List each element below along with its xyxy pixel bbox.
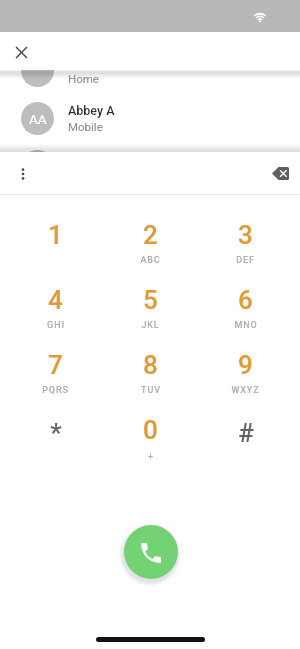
- staticText: AA: [29, 111, 47, 127]
- staticText: +: [148, 452, 154, 463]
- button[interactable]: 8: [103, 350, 198, 412]
- staticText: 2: [143, 220, 158, 250]
- staticText: 1: [48, 220, 63, 250]
- button[interactable]: 9: [198, 350, 293, 412]
- button[interactable]: Backspace: [268, 161, 292, 185]
- button[interactable]: 1: [8, 220, 103, 282]
- button[interactable]: 3: [198, 220, 293, 282]
- staticText: JKL: [141, 320, 160, 331]
- button[interactable]: AB: [0, 142, 300, 152]
- staticText: 0: [143, 415, 158, 445]
- staticText: Home: [68, 72, 99, 85]
- staticText: 6: [238, 285, 253, 315]
- button[interactable]: #: [198, 418, 293, 480]
- button[interactable]: 6: [198, 285, 293, 347]
- staticText: 4: [48, 285, 63, 315]
- staticText: DEF: [236, 255, 255, 266]
- button[interactable]: 4: [8, 285, 103, 347]
- staticText: GHI: [47, 320, 65, 331]
- button[interactable]: Call: [124, 525, 178, 579]
- button[interactable]: AA: [0, 94, 300, 142]
- staticText: 7: [48, 350, 63, 380]
- staticText: 8: [143, 350, 158, 380]
- staticText: WXYZ: [231, 385, 260, 396]
- button[interactable]: Close: [9, 40, 33, 64]
- staticText: Mobile: [68, 120, 103, 133]
- staticText: ABC: [140, 255, 161, 266]
- staticText: MNO: [234, 320, 258, 331]
- button[interactable]: *: [8, 418, 103, 480]
- button[interactable]: Louise: [0, 70, 300, 94]
- staticText: *: [50, 418, 62, 448]
- button[interactable]: 7: [8, 350, 103, 412]
- button[interactable]: 2: [103, 220, 198, 282]
- button[interactable]: 0: [103, 415, 198, 477]
- button[interactable]: 5: [103, 285, 198, 347]
- staticText: TUV: [141, 385, 161, 396]
- staticText: 5: [143, 285, 158, 315]
- staticText: 9: [238, 350, 253, 380]
- staticText: PQRS: [42, 385, 69, 396]
- staticText: Abbey A: [68, 103, 115, 118]
- staticText: #: [238, 418, 254, 448]
- button[interactable]: More options: [11, 162, 35, 186]
- staticText: 3: [238, 220, 253, 250]
